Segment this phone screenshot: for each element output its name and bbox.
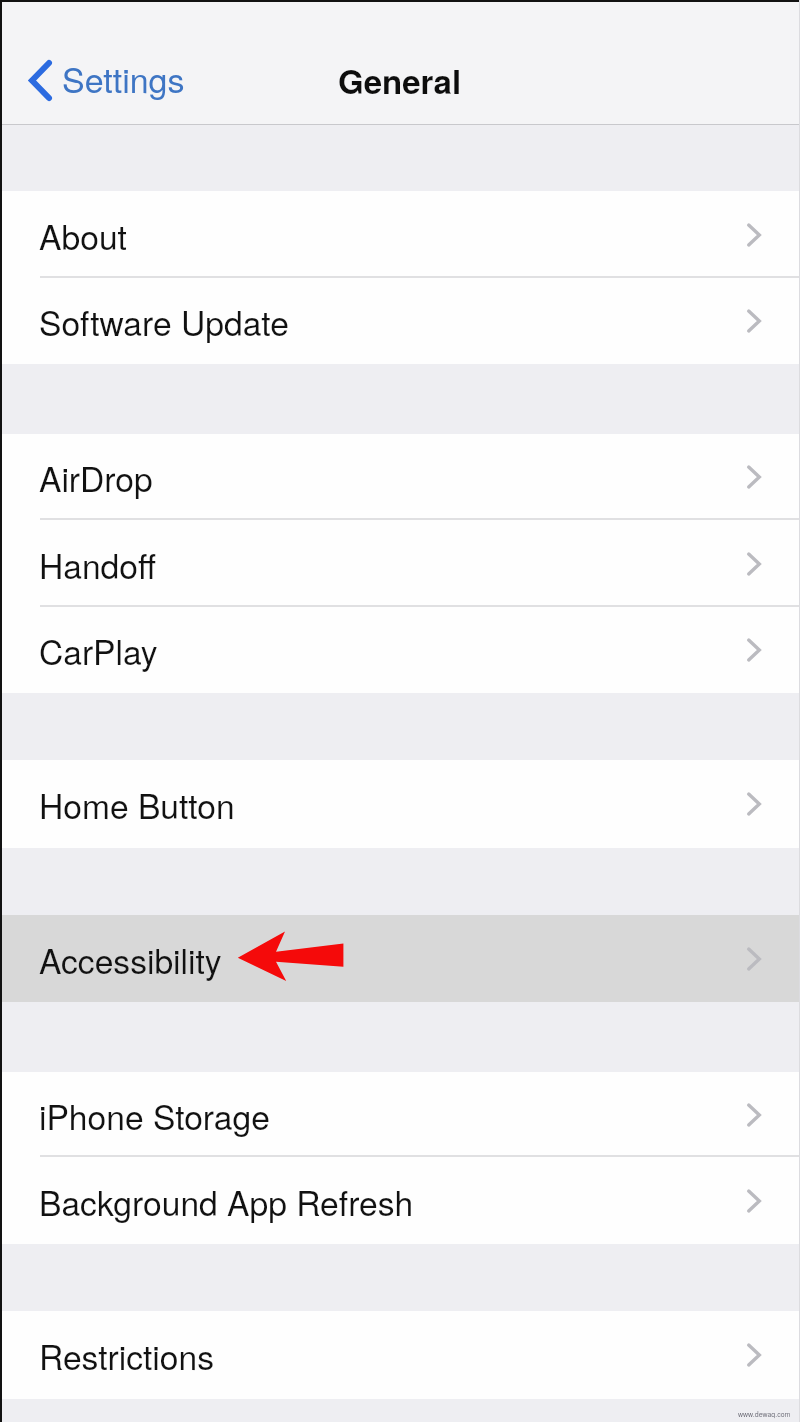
button[interactable]: About — [0, 191, 800, 278]
button[interactable]: Restrictions — [0, 1311, 800, 1399]
staticText: AirDrop — [39, 453, 153, 501]
staticText: Background App Refresh — [39, 1177, 414, 1225]
button[interactable]: Background App Refresh — [0, 1157, 800, 1244]
staticText: www.dewaq.com — [738, 1409, 791, 1419]
staticText: Software Update — [39, 297, 289, 345]
button[interactable]: AirDrop — [0, 434, 800, 520]
staticText: Accessibility — [39, 935, 222, 983]
button[interactable]: Back to Settings — [28, 56, 185, 105]
staticText: Restrictions — [39, 1331, 214, 1379]
staticText: General — [338, 57, 462, 104]
button[interactable]: iPhone Storage — [0, 1072, 800, 1157]
staticText: CarPlay — [39, 626, 158, 674]
staticText: About — [39, 211, 127, 259]
staticText: Handoff — [39, 540, 156, 588]
button[interactable]: Handoff — [0, 520, 800, 607]
button[interactable]: Software Update — [0, 278, 800, 364]
staticText: iPhone Storage — [39, 1091, 270, 1139]
button[interactable]: CarPlay — [0, 607, 800, 693]
staticText: Home Button — [39, 780, 235, 828]
staticText: Settings — [62, 54, 185, 103]
button[interactable]: Accessibility — [0, 915, 800, 1002]
button[interactable]: Home Button — [0, 760, 800, 848]
